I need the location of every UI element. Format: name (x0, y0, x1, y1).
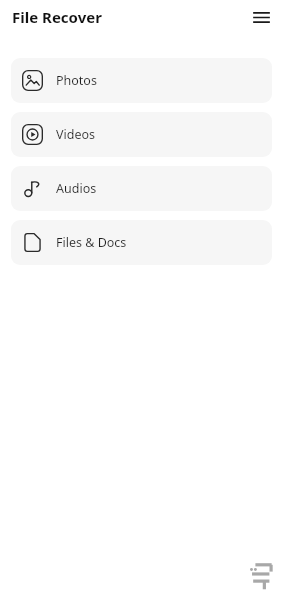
button[interactable]: Files & Docs (11, 220, 272, 265)
button[interactable]: Photos (11, 58, 272, 103)
staticText: Audios (56, 180, 97, 197)
staticText: Photos (56, 72, 97, 89)
staticText: Files & Docs (56, 234, 127, 251)
button[interactable]: Audios (11, 166, 272, 211)
staticText: Videos (56, 126, 96, 143)
staticText: File Recover (12, 7, 102, 27)
button[interactable]: Menu (245, 1, 277, 33)
button[interactable]: Videos (11, 112, 272, 157)
